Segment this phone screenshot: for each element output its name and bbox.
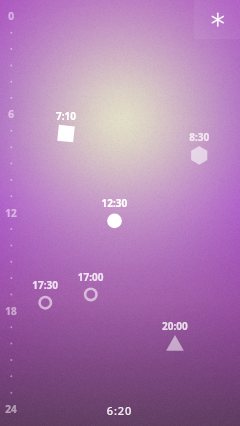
button[interactable]: New event: [194, 0, 240, 39]
